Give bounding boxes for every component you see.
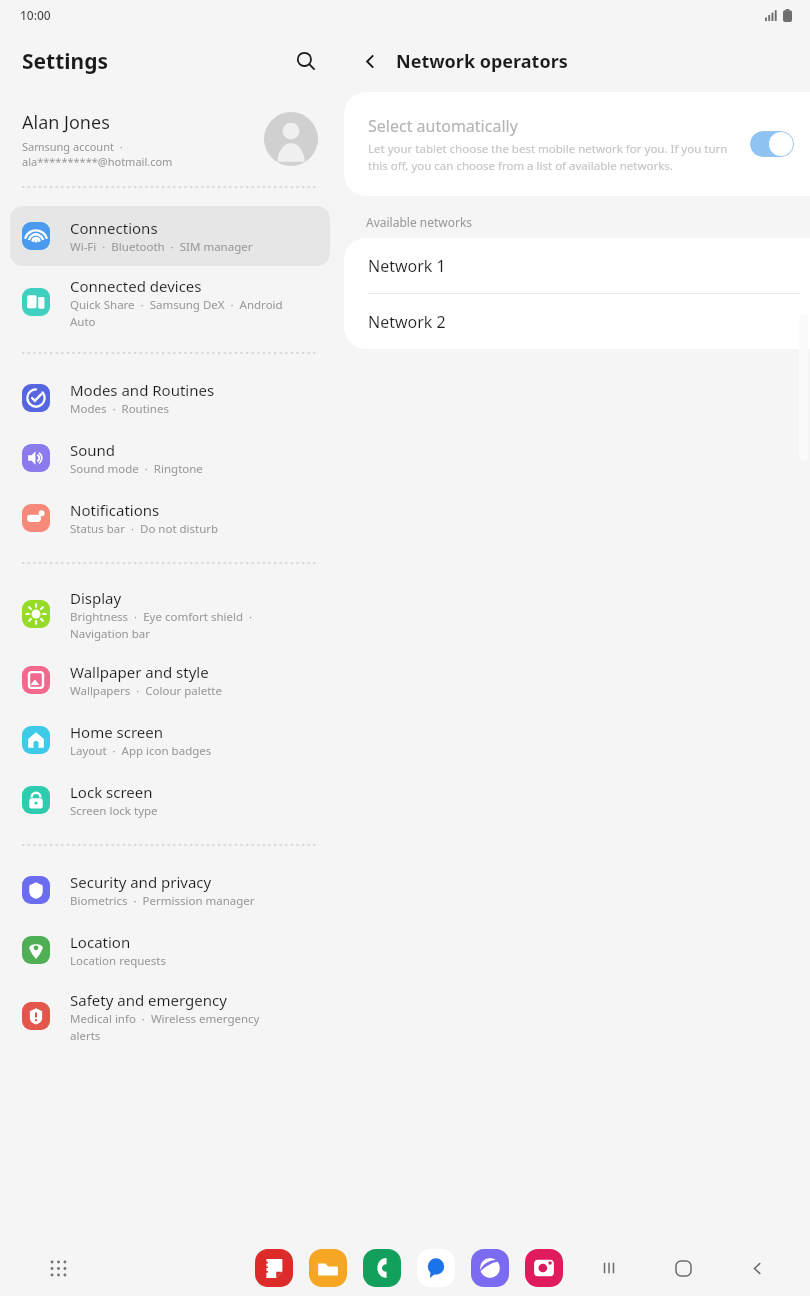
button[interactable]: Network 2 [344, 294, 810, 349]
staticText: Home screen [70, 722, 164, 742]
staticText: Medical info · Wireless emergency alerts [70, 1011, 260, 1043]
button[interactable]: Camera [525, 1249, 563, 1287]
button[interactable]: Location [10, 920, 330, 980]
button[interactable]: Display [10, 578, 330, 650]
staticText: Location [70, 932, 131, 952]
button[interactable]: Home [664, 1249, 702, 1287]
staticText: Let your tablet choose the best mobile n… [368, 141, 738, 173]
button[interactable]: Notifications [10, 488, 330, 548]
staticText: Security and privacy [70, 872, 212, 892]
staticText: Display [70, 588, 122, 608]
button[interactable]: Apps [38, 1248, 78, 1288]
staticText: Location requests [70, 953, 166, 969]
button[interactable]: Back [350, 41, 390, 81]
staticText: Connections [70, 218, 158, 238]
staticText: Quick Share · Samsung DeX · Android Auto [70, 297, 283, 329]
staticText: Brightness · Eye comfort shield · Naviga… [70, 609, 253, 641]
staticText: Settings [22, 47, 109, 76]
staticText: Select automatically [368, 115, 518, 137]
staticText: Connected devices [70, 276, 202, 296]
button[interactable]: Messages [417, 1249, 455, 1287]
button[interactable]: Alan Jones [0, 92, 340, 186]
button[interactable]: Select automatically [344, 92, 810, 196]
button[interactable]: Back [738, 1249, 776, 1287]
button[interactable]: Lock screen [10, 770, 330, 830]
staticText: Available networks [366, 214, 473, 230]
button[interactable]: Wallpaper and style [10, 650, 330, 710]
staticText: Modes and Routines [70, 380, 215, 400]
staticText: Sound [70, 440, 116, 460]
staticText: Sound mode · Ringtone [70, 461, 203, 477]
button[interactable]: My Files [309, 1249, 347, 1287]
staticText: Network 1 [368, 255, 446, 277]
button[interactable]: Sound [10, 428, 330, 488]
staticText: Safety and emergency [70, 990, 227, 1010]
button[interactable]: Modes and Routines [10, 368, 330, 428]
staticText: Biometrics · Permission manager [70, 893, 255, 909]
button[interactable]: Notes [255, 1249, 293, 1287]
staticText: Notifications [70, 500, 160, 520]
button[interactable]: Internet [471, 1249, 509, 1287]
button[interactable]: Recents [590, 1249, 628, 1287]
staticText: Network operators [396, 49, 568, 74]
staticText: Modes · Routines [70, 401, 169, 417]
button[interactable]: Home screen [10, 710, 330, 770]
staticText: Layout · App icon badges [70, 743, 212, 759]
staticText: Wallpaper and style [70, 662, 209, 682]
staticText: Alan Jones [22, 110, 110, 135]
button[interactable]: Network 1 [344, 238, 810, 293]
staticText: Status bar · Do not disturb [70, 521, 219, 537]
button[interactable]: Connected devices [10, 266, 330, 338]
staticText: Lock screen [70, 782, 153, 802]
staticText: Screen lock type [70, 803, 158, 819]
staticText: Wi-Fi · Bluetooth · SIM manager [70, 239, 253, 255]
button[interactable]: Search [284, 39, 328, 83]
button[interactable]: Select automatically toggle [750, 131, 794, 157]
button[interactable]: Phone [363, 1249, 401, 1287]
staticText: 10:00 [20, 7, 51, 23]
button[interactable]: Security and privacy [10, 860, 330, 920]
button[interactable]: Connections [10, 206, 330, 266]
staticText: Wallpapers · Colour palette [70, 683, 222, 699]
staticText: Network 2 [368, 311, 446, 333]
button[interactable]: Safety and emergency [10, 980, 330, 1052]
staticText: Samsung account · ala**********@hotmail.… [22, 139, 173, 169]
